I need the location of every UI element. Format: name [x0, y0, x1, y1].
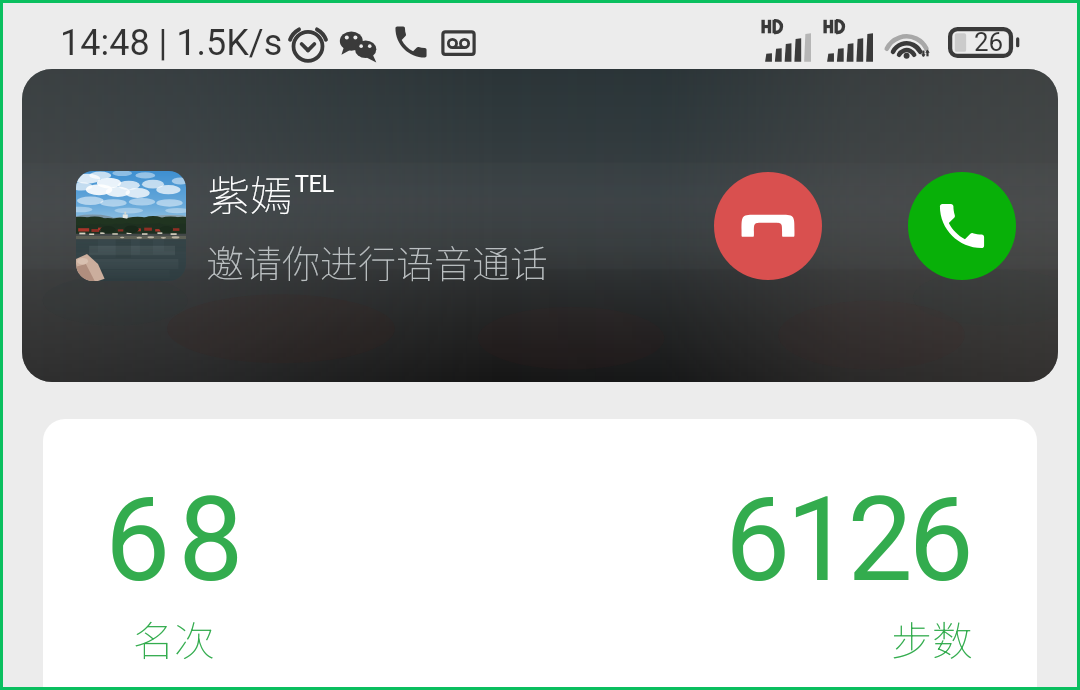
button[interactable]: Accept call — [908, 172, 1016, 280]
staticText: 步数 — [891, 608, 973, 667]
button[interactable]: Decline call — [714, 172, 822, 280]
staticText: TEL — [295, 171, 335, 198]
staticText: 紫嫣 — [208, 162, 293, 223]
staticText: 名次 — [133, 608, 215, 667]
staticText: 14:48 | 1.5K/s — [60, 22, 283, 64]
staticText: 26 — [974, 27, 1004, 57]
button[interactable]: 68 — [43, 419, 1037, 687]
staticText: 6126 — [725, 472, 970, 608]
button[interactable]: 紫嫣 — [22, 69, 1058, 382]
staticText: 68 — [105, 472, 252, 608]
staticText: 邀请你进行语音通话 — [206, 234, 549, 289]
